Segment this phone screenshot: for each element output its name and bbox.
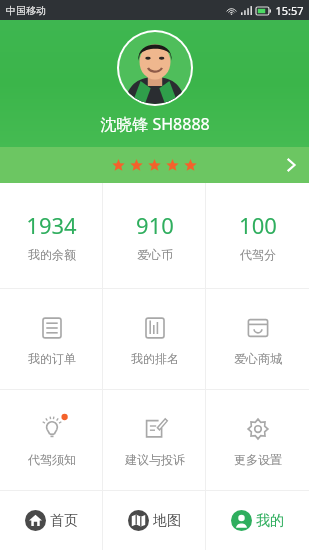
button[interactable]: 我的 bbox=[206, 491, 309, 550]
button[interactable]: 建议与投诉 bbox=[103, 390, 206, 490]
staticText: 我的排名 bbox=[131, 351, 179, 366]
staticText: 地图 bbox=[153, 512, 181, 530]
button[interactable]: 我的订单 bbox=[0, 289, 103, 389]
button[interactable]: 代驾须知 bbox=[0, 390, 103, 490]
button[interactable]: 1934 bbox=[0, 183, 103, 288]
staticText: 100 bbox=[239, 210, 277, 240]
button[interactable]: 910 bbox=[103, 183, 206, 288]
staticText: 沈晓锋 SH8888 bbox=[100, 113, 210, 135]
button[interactable]: Profile photo bbox=[117, 30, 193, 106]
button[interactable]: Rating details bbox=[0, 147, 309, 183]
staticText: 爱心币 bbox=[137, 247, 173, 262]
staticText: 我的余额 bbox=[28, 247, 76, 262]
staticText: 910 bbox=[136, 210, 174, 240]
staticText: 建议与投诉 bbox=[125, 452, 185, 467]
staticText: 代驾分 bbox=[240, 247, 276, 262]
button[interactable]: 爱心商城 bbox=[206, 289, 309, 389]
button[interactable]: 100 bbox=[206, 183, 309, 288]
staticText: 更多设置 bbox=[234, 452, 282, 467]
button[interactable]: 更多设置 bbox=[206, 390, 309, 490]
staticText: 我的 bbox=[256, 512, 284, 530]
staticText: 15:57 bbox=[275, 3, 304, 18]
staticText: 中国移动 bbox=[6, 4, 46, 17]
staticText: 首页 bbox=[50, 512, 78, 530]
button[interactable]: 首页 bbox=[0, 491, 103, 550]
staticText: 1934 bbox=[26, 210, 77, 240]
staticText: 我的订单 bbox=[28, 351, 76, 366]
button[interactable]: 我的排名 bbox=[103, 289, 206, 389]
button[interactable]: 地图 bbox=[103, 491, 206, 550]
staticText: 代驾须知 bbox=[28, 452, 76, 467]
staticText: 爱心商城 bbox=[234, 351, 282, 366]
